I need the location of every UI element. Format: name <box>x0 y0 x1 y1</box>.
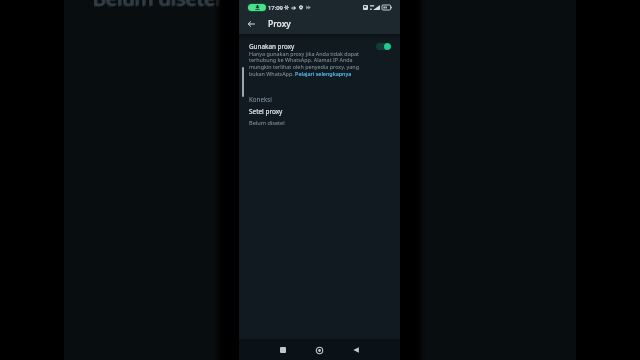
staticText: Setel proxy <box>249 107 283 116</box>
staticText: 17:09 <box>268 4 283 12</box>
staticText: Belum disetel <box>92 0 220 12</box>
staticText: Belum disetel <box>94 0 222 12</box>
staticText: Proxy <box>268 18 291 30</box>
button[interactable]: Recents <box>275 342 291 358</box>
staticText: Belum disetel <box>92 0 220 13</box>
staticText: Gunakan proxy <box>249 42 295 51</box>
staticText: Belum disetel <box>93 0 221 12</box>
button[interactable]: Setel proxy <box>239 106 400 129</box>
staticText: Belum disetel <box>94 0 222 11</box>
staticText: Koneksi <box>249 95 272 103</box>
staticText: Hanya gunakan proxy jika Anda tidak dapa… <box>249 50 371 78</box>
staticText: Belum disetel <box>93 0 221 11</box>
button[interactable]: Home <box>311 342 327 358</box>
button[interactable]: Back <box>242 15 260 33</box>
button[interactable]: Back <box>348 342 364 358</box>
staticText: Belum disetel <box>249 119 285 127</box>
button[interactable]: Gunakan proxy <box>239 40 400 53</box>
staticText: Belum disetel <box>92 0 220 11</box>
